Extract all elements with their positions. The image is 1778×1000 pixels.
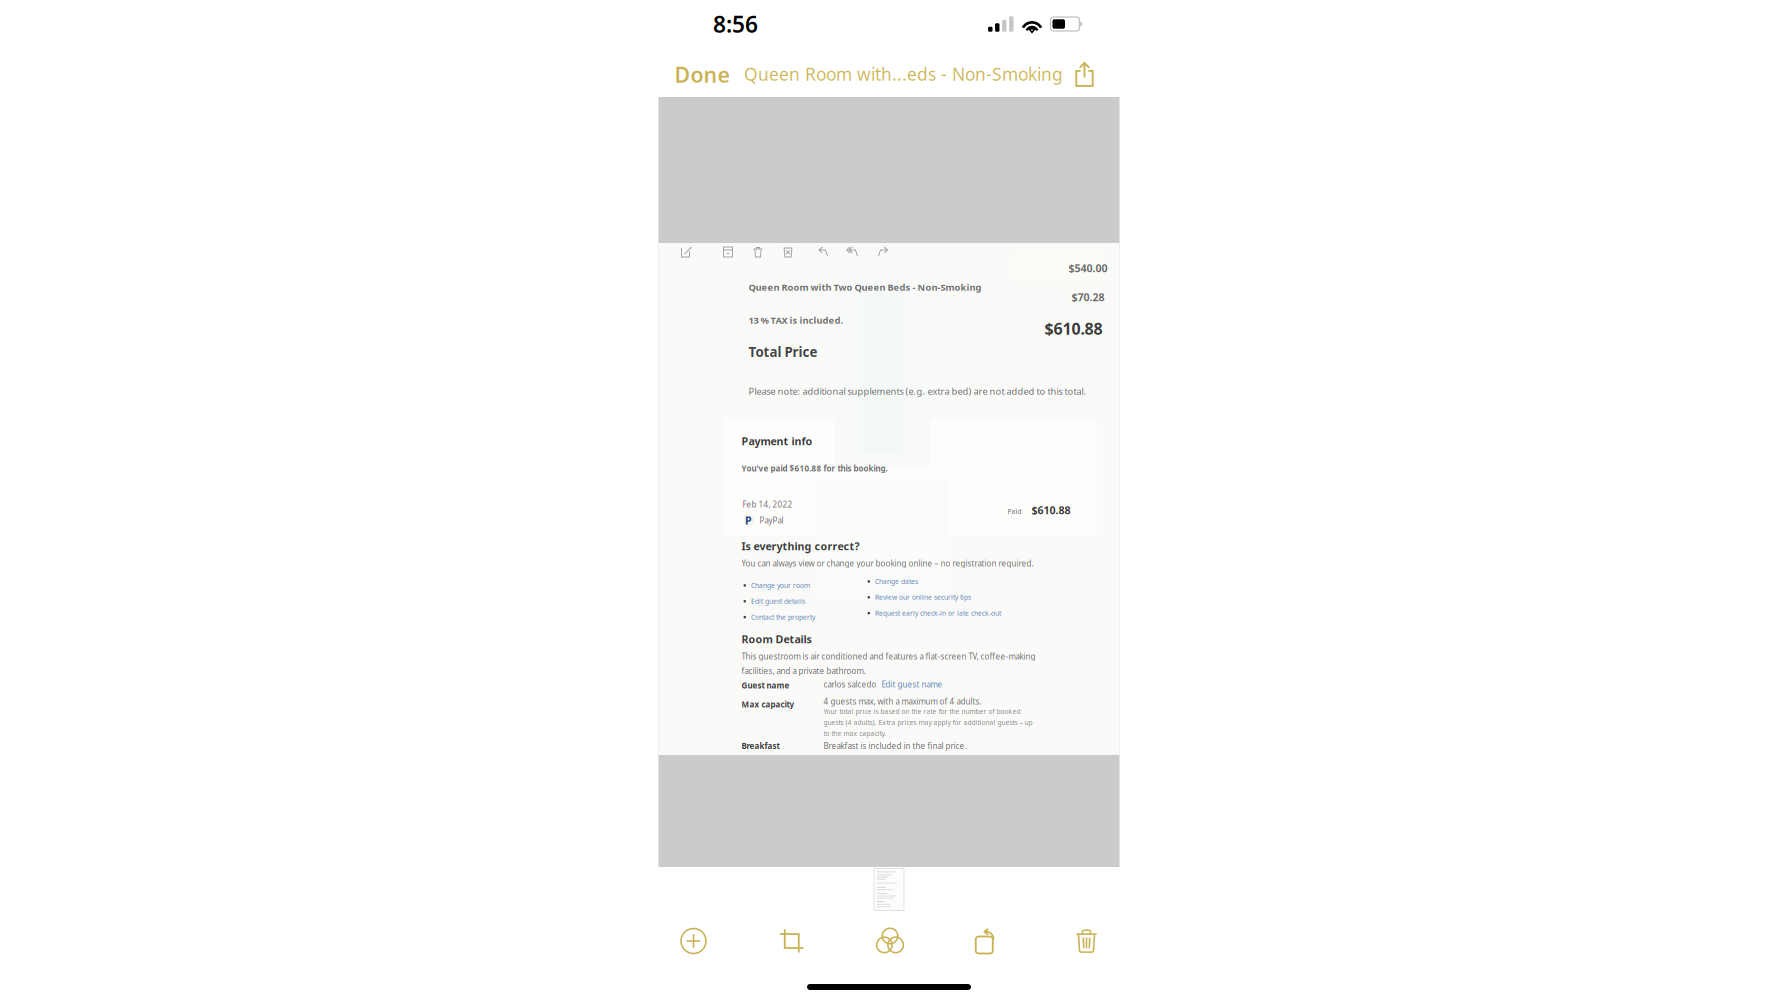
staticText: Is everything correct?: [741, 539, 859, 553]
button[interactable]: Add page: [665, 916, 721, 966]
staticText: $540.00: [1068, 261, 1107, 275]
staticText: Done: [674, 60, 729, 89]
staticText: Room Details: [741, 632, 811, 646]
staticText: Request early check-in or late check-out: [875, 609, 1001, 618]
staticText: Your total price is based on the rate fo…: [823, 707, 1020, 716]
staticText: Max capacity: [741, 699, 794, 710]
staticText: carlos salcedo: [823, 679, 876, 690]
staticText: Change dates: [875, 577, 918, 586]
staticText: $70.28: [1071, 290, 1104, 304]
staticText: facilities, and a private bathroom.: [741, 666, 865, 676]
staticText: Contact the property: [751, 613, 815, 622]
staticText: Edit guest name: [881, 679, 942, 690]
staticText: You've paid $610.88 for this booking.: [741, 463, 887, 474]
staticText: P: [745, 513, 752, 527]
staticText: 8:56: [713, 9, 758, 39]
staticText: This guestroom is air conditioned and fe…: [741, 651, 1035, 662]
staticText: 4 guests max, with a maximum of 4 adults…: [823, 696, 981, 707]
staticText: guests (4 adults). Extra prices may appl…: [823, 718, 1032, 727]
staticText: Change your room: [751, 581, 810, 590]
staticText: Review our online security tips: [875, 593, 971, 602]
button[interactable]: Rotate: [960, 916, 1016, 966]
staticText: Paid: [1007, 507, 1021, 516]
button[interactable]: Done: [672, 48, 737, 97]
button[interactable]: Crop: [764, 916, 820, 966]
staticText: Guest name: [741, 680, 789, 691]
staticText: Breakfast is included in the final price…: [823, 740, 966, 751]
staticText: 13 % TAX is included.: [748, 314, 843, 326]
staticText: Feb 14, 2022: [742, 499, 792, 510]
staticText: $610.88: [1044, 318, 1102, 339]
staticText: Breakfast: [741, 740, 779, 751]
staticText: PayPal: [759, 515, 783, 526]
button[interactable]: Page 1 thumbnail: [874, 868, 904, 910]
staticText: Payment info: [741, 434, 812, 448]
staticText: Total Price: [748, 343, 817, 361]
button[interactable]: Filters: [862, 916, 918, 966]
button[interactable]: Share: [1069, 55, 1099, 89]
staticText: Please note: additional supplements (e.g…: [748, 385, 1086, 397]
button[interactable]: Delete: [1058, 916, 1114, 966]
staticText: Queen Room with Two Queen Beds - Non-Smo…: [748, 281, 981, 293]
staticText: You can always view or change your booki…: [741, 558, 1033, 569]
staticText: $610.88: [1031, 503, 1070, 517]
staticText: Edit guest details: [751, 597, 805, 606]
staticText: to the max capacity.: [823, 729, 886, 738]
staticText: Queen Room with...eds - Non-Smoking: [744, 62, 1063, 85]
